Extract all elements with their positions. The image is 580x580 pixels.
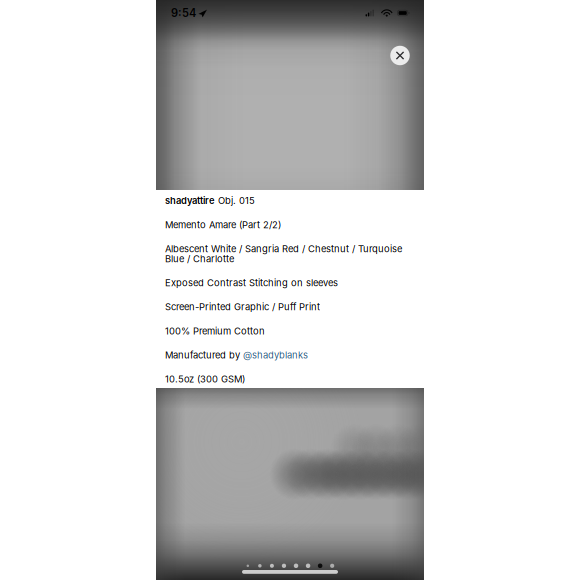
staticText: 100% Premium Cotton (165, 325, 265, 337)
staticText: Screen-Printed Graphic / Puff Print (165, 301, 320, 313)
staticText: Exposed Contrast Stitching on sleeves (165, 277, 338, 289)
staticText: Blue / Charlotte (165, 253, 234, 265)
button[interactable]: @shadyblanks (243, 349, 308, 361)
staticText: Obj. 015 (215, 195, 255, 206)
staticText: shadyattire (165, 195, 215, 206)
staticText: 10.5oz (300 GSM) (165, 373, 245, 385)
button[interactable]: Close (387, 42, 413, 68)
staticText: @shadyblanks (243, 349, 308, 361)
staticText: Albescent White / Sangria Red / Chestnut… (165, 243, 402, 254)
staticText: Memento Amare (Part 2/2) (165, 219, 281, 230)
staticText: Manufactured by (165, 349, 243, 361)
staticText: 9:54 (171, 6, 196, 20)
